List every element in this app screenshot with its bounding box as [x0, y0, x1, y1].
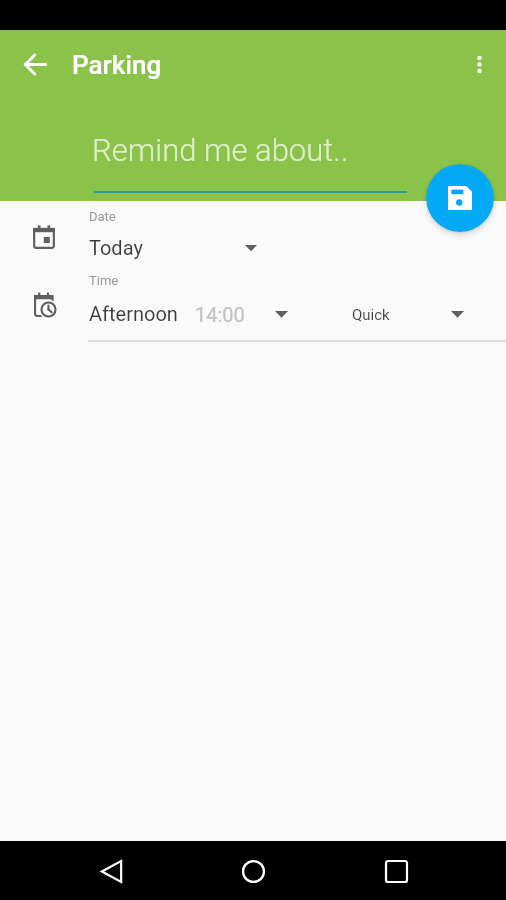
button[interactable]: Back [87, 847, 135, 895]
button[interactable]: More options [457, 42, 501, 86]
button[interactable]: Remind me about.. [93, 125, 407, 193]
staticText: Quick [352, 306, 390, 324]
staticText: Time [89, 273, 119, 288]
button[interactable]: Save [426, 164, 494, 232]
button[interactable]: Date [0, 201, 506, 269]
staticText: Parking [72, 50, 162, 80]
staticText: Date [89, 209, 116, 224]
button[interactable]: Recents [372, 847, 420, 895]
button[interactable]: Time [0, 269, 506, 341]
staticText: Today [89, 236, 143, 259]
staticText: Afternoon [89, 302, 178, 325]
button[interactable]: Home [229, 847, 277, 895]
staticText: Remind me about.. [92, 132, 349, 168]
button[interactable]: Back [13, 42, 57, 86]
staticText: 14:00 [195, 303, 245, 326]
